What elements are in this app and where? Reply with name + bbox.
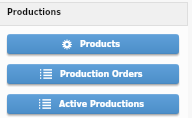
other: List bbox=[39, 99, 51, 109]
staticText: Productions bbox=[7, 8, 61, 17]
button[interactable]: Products bbox=[7, 34, 179, 54]
staticText: Active Productions bbox=[59, 100, 144, 109]
other: List bbox=[40, 69, 52, 79]
staticText: Production Orders bbox=[60, 70, 143, 79]
button[interactable]: List bbox=[7, 94, 179, 114]
staticText: Products bbox=[80, 40, 121, 49]
button[interactable]: List bbox=[7, 64, 179, 84]
other: Products bbox=[62, 39, 72, 50]
